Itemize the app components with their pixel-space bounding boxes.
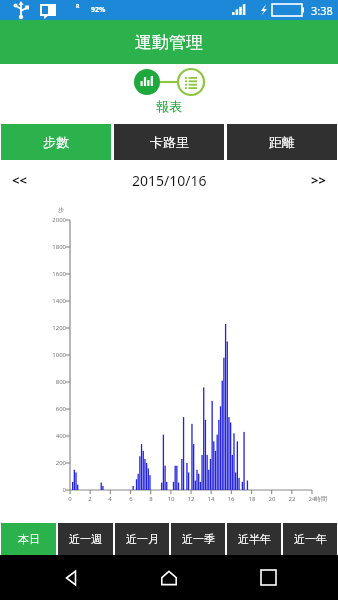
staticText: 近一月 [126,532,159,546]
staticText: 距離 [269,134,295,150]
button[interactable]: 本日 [1,523,56,555]
staticText: 10 [163,495,179,503]
staticText: 18 [244,495,260,503]
staticText: 近一年 [294,532,327,546]
staticText: 8 [143,495,159,503]
button[interactable]: 近半年 [227,523,281,555]
staticText: 1000 [44,351,66,359]
staticText: 1800 [44,243,66,251]
staticText: 6 [123,495,139,503]
button[interactable]: Previous day [12,166,52,194]
staticText: 92% [91,5,106,15]
staticText: 12 [183,495,199,503]
button[interactable]: Back [43,555,99,600]
staticText: 400 [44,432,66,440]
staticText: 4 [102,495,118,503]
staticText: 0 [44,486,66,494]
button[interactable]: 步數 [1,124,111,160]
staticText: 24 [304,495,320,503]
staticText: 近一週 [69,532,102,546]
staticText: 步數 [43,134,69,150]
staticText: 2000 [44,216,66,224]
staticText: 1200 [44,324,66,332]
button[interactable]: 近一週 [58,523,113,555]
staticText: 運動管理 [135,32,203,53]
staticText: 200 [44,459,66,467]
staticText: 本日 [18,532,40,546]
staticText: 1600 [44,270,66,278]
staticText: 時間 [315,495,327,503]
staticText: 14 [203,495,219,503]
staticText: 22 [284,495,300,503]
button[interactable]: 近一季 [171,523,225,555]
staticText: 20 [264,495,280,503]
staticText: 1400 [44,297,66,305]
staticText: 卡路里 [150,134,189,150]
button[interactable]: Next day [286,166,326,194]
button[interactable]: 近一年 [283,523,337,555]
staticText: 近半年 [238,532,271,546]
staticText: << [12,171,27,189]
staticText: 近一季 [182,532,215,546]
staticText: >> [311,171,326,189]
staticText: 報表 [156,98,182,114]
staticText: 800 [44,378,66,386]
staticText: 600 [44,405,66,413]
staticText: 3:38 [311,3,333,18]
button[interactable]: 距離 [227,124,337,160]
staticText: 2 [82,495,98,503]
staticText: 16 [223,495,239,503]
staticText: 0 [62,495,78,503]
staticText: R [76,3,80,10]
staticText: 2015/10/16 [132,171,207,190]
button[interactable]: 報表 [0,64,338,96]
button[interactable]: 卡路里 [114,124,224,160]
button[interactable]: Recents [240,555,296,600]
button[interactable]: 近一月 [115,523,169,555]
staticText: 步 [58,206,64,214]
button[interactable]: Home [141,555,197,600]
